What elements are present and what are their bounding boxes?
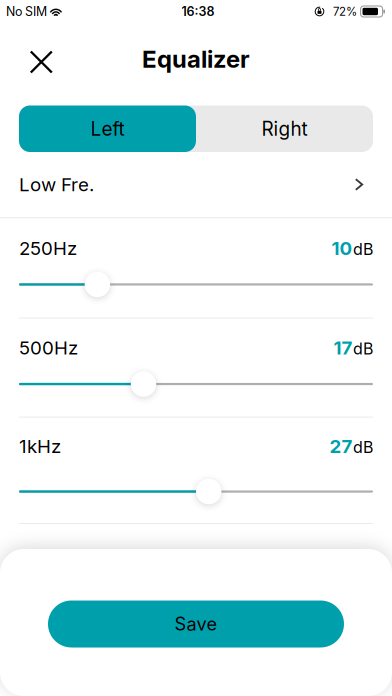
staticText: dB [353,438,373,457]
button[interactable]: Low Fre. [0,177,392,218]
staticText: 1kHz [19,435,61,458]
staticText: Equalizer [142,44,250,73]
staticText: Save [174,613,217,635]
staticText: 250Hz [19,237,77,259]
staticText: Right [261,117,307,140]
button[interactable]: Close [19,40,63,84]
staticText: 72% [333,5,357,18]
staticText: 16:38 [181,4,214,19]
button[interactable]: Right [196,105,373,152]
staticText: 10 [331,237,352,259]
staticText: 500Hz [19,336,78,359]
button[interactable]: Left [19,105,196,152]
button[interactable]: Save [48,600,344,647]
staticText: Left [90,117,124,140]
staticText: dB [353,239,373,259]
staticText: 17 [333,336,352,359]
staticText: Low Fre. [19,173,94,196]
staticText: No SIM [6,4,47,19]
staticText: dB [353,339,373,358]
staticText: 27 [329,435,352,458]
